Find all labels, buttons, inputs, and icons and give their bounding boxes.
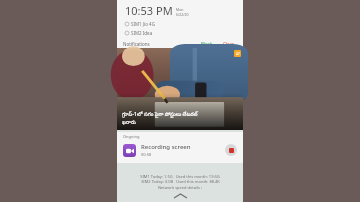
staticText: ఖరారు [122, 119, 136, 126]
staticText: SIM2 Today: 0.0B Used this month: 88.4K [141, 179, 220, 184]
button[interactable]: Stop recording [225, 144, 237, 156]
staticText: Network speed details › [158, 185, 203, 190]
button[interactable]: Recording screen [117, 139, 243, 161]
button[interactable]: Collapse shade [170, 193, 190, 199]
button[interactable]: News app [117, 48, 243, 130]
staticText: SIM1 Jio 4G [131, 21, 155, 27]
staticText: Clear [223, 41, 234, 47]
staticText: గ్రూప్-1లో సగం పైగా పోస్టులు లేటరల్ [122, 110, 198, 118]
button[interactable]: Network speed details › [155, 184, 206, 191]
other: News app [234, 50, 241, 57]
staticText: Recording screen [141, 143, 191, 151]
staticText: 6/22/20 [176, 12, 189, 17]
staticText: 10:53 PM [125, 3, 173, 18]
staticText: SIM2 Idea [131, 30, 153, 36]
button[interactable]: Block [198, 40, 216, 48]
staticText: Notifications [123, 41, 150, 47]
staticText: 00:58 [141, 152, 152, 157]
staticText: Block [201, 41, 213, 47]
staticText: Mon [176, 7, 184, 12]
button[interactable]: Clear [220, 40, 237, 48]
staticText: Ongoing [123, 134, 140, 139]
button[interactable]: SIM1 Jio 4G [117, 20, 243, 28]
staticText: SIM1 Today: 1.5G Used this month: 19.6G [140, 174, 220, 179]
button[interactable]: SIM2 Idea [117, 29, 243, 37]
